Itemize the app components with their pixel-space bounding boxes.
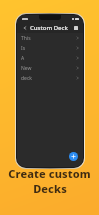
- staticText: Is: [21, 45, 26, 52]
- staticText: A: [21, 55, 25, 62]
- button[interactable]: Is: [17, 43, 83, 53]
- button[interactable]: New: [17, 63, 83, 73]
- button[interactable]: Add deck: [69, 152, 78, 161]
- button[interactable]: deck: [17, 73, 83, 83]
- button[interactable]: Back: [21, 24, 28, 31]
- button[interactable]: Save: [72, 24, 79, 31]
- staticText: Create custom: [8, 166, 91, 181]
- staticText: Custom Deck: [30, 24, 68, 32]
- staticText: This: [21, 35, 31, 42]
- staticText: New: [21, 65, 32, 72]
- staticText: deck: [21, 75, 32, 82]
- staticText: Decks: [33, 181, 67, 196]
- button[interactable]: A: [17, 53, 83, 63]
- button[interactable]: This: [17, 33, 83, 43]
